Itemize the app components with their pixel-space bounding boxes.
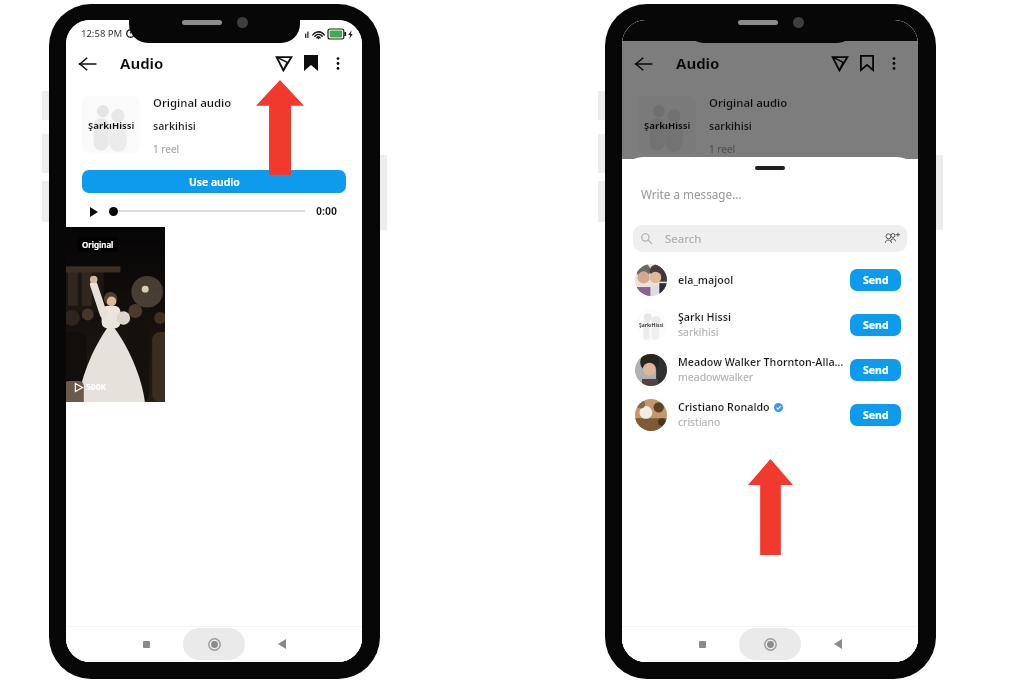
staticText: 1 reel <box>709 142 736 156</box>
button[interactable]: Cristiano Ronaldo <box>622 392 918 437</box>
staticText: sarkihisi <box>709 119 752 133</box>
staticText: Send <box>863 273 889 287</box>
staticText: Audio <box>120 53 164 73</box>
staticText: Original audio <box>153 95 232 110</box>
staticText: Original <box>82 239 114 250</box>
button[interactable]: More options <box>880 49 908 77</box>
staticText: 500K <box>86 381 107 393</box>
button[interactable]: Share <box>826 49 854 77</box>
staticText: 12:58 PM <box>81 27 123 40</box>
button[interactable]: Save <box>853 49 881 77</box>
button[interactable]: Play <box>87 205 100 218</box>
button[interactable]: Back <box>629 49 658 78</box>
staticText: Send <box>863 363 889 377</box>
staticText: ŞarkıHissi <box>88 119 135 132</box>
button[interactable]: Search <box>633 225 907 252</box>
button[interactable]: Share <box>270 49 298 77</box>
button[interactable]: Home <box>203 633 225 655</box>
staticText: 1 reel <box>153 142 180 156</box>
staticText: cristiano <box>678 415 721 429</box>
button[interactable]: Send <box>850 359 901 381</box>
button[interactable]: Back <box>827 633 849 655</box>
staticText: Cristiano Ronaldo <box>678 400 770 414</box>
button[interactable]: Send <box>850 404 901 426</box>
button[interactable]: ŞarkıHissi <box>622 302 918 347</box>
staticText: Meadow Walker Thornton-Allan… <box>678 355 844 369</box>
button[interactable]: Home <box>759 633 781 655</box>
button[interactable]: Send <box>850 269 901 291</box>
staticText: 0:00 <box>316 204 337 218</box>
staticText: Audio <box>676 53 720 73</box>
staticText: meadowwalker <box>678 370 754 384</box>
staticText: Send <box>863 408 889 422</box>
button[interactable]: More options <box>324 49 352 77</box>
staticText: Send <box>863 318 889 332</box>
staticText: Write a message... <box>641 186 742 202</box>
staticText: sarkihisi <box>153 119 196 133</box>
staticText: Şarkı Hissi <box>678 310 732 324</box>
button[interactable]: Recents <box>691 633 713 655</box>
button[interactable]: Send <box>850 314 901 336</box>
button[interactable]: Back <box>271 633 293 655</box>
staticText: Search <box>665 231 702 247</box>
button[interactable]: Recents <box>135 633 157 655</box>
staticText: sarkihisi <box>678 325 719 339</box>
button[interactable]: Use audio <box>82 170 346 193</box>
button[interactable]: Save <box>297 49 325 77</box>
staticText: Original audio <box>709 95 788 110</box>
staticText: ŞarkıHissi <box>639 322 664 329</box>
staticText: ela_majool <box>678 273 734 287</box>
staticText: Use audio <box>189 175 240 189</box>
button[interactable]: Back <box>73 49 102 78</box>
button[interactable]: Meadow Walker Thornton-Allan… <box>622 347 918 392</box>
button[interactable]: ela_majool <box>622 257 918 302</box>
staticText: ŞarkıHissi <box>644 119 691 132</box>
